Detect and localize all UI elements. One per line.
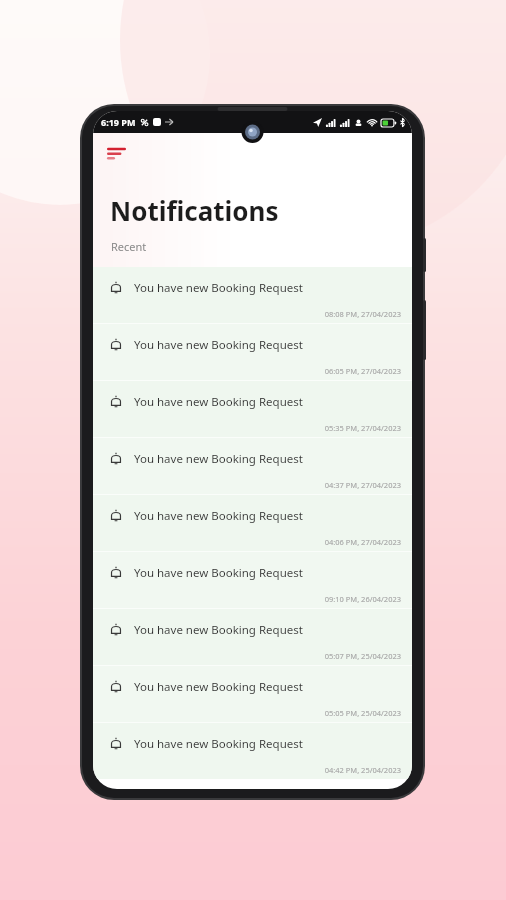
- staticText: You have new Booking Request: [134, 736, 303, 752]
- staticText: You have new Booking Request: [134, 679, 303, 695]
- staticText: You have new Booking Request: [134, 565, 303, 581]
- button[interactable]: You have new Booking Request: [93, 267, 412, 323]
- staticText: You have new Booking Request: [134, 622, 303, 638]
- button[interactable]: You have new Booking Request: [93, 495, 412, 551]
- button[interactable]: Menu: [107, 141, 141, 167]
- button[interactable]: You have new Booking Request: [93, 438, 412, 494]
- staticText: 05:05 PM, 25/04/2023: [324, 708, 401, 718]
- button[interactable]: You have new Booking Request: [93, 609, 412, 665]
- staticText: You have new Booking Request: [134, 451, 303, 467]
- staticText: You have new Booking Request: [134, 280, 303, 296]
- staticText: 04:37 PM, 27/04/2023: [324, 480, 401, 490]
- staticText: 05:07 PM, 25/04/2023: [324, 651, 401, 661]
- button[interactable]: You have new Booking Request: [93, 723, 412, 779]
- staticText: You have new Booking Request: [134, 508, 303, 524]
- staticText: 09:10 PM, 26/04/2023: [324, 594, 401, 604]
- staticText: 06:05 PM, 27/04/2023: [324, 366, 401, 376]
- button[interactable]: You have new Booking Request: [93, 381, 412, 437]
- staticText: Notifications: [110, 193, 279, 228]
- staticText: Recent: [111, 239, 147, 254]
- button[interactable]: You have new Booking Request: [93, 666, 412, 722]
- staticText: 04:42 PM, 25/04/2023: [324, 765, 401, 775]
- staticText: You have new Booking Request: [134, 337, 303, 353]
- staticText: 05:35 PM, 27/04/2023: [324, 423, 401, 433]
- button[interactable]: You have new Booking Request: [93, 324, 412, 380]
- staticText: You have new Booking Request: [134, 394, 303, 410]
- staticText: 08:08 PM, 27/04/2023: [324, 309, 401, 319]
- button[interactable]: You have new Booking Request: [93, 552, 412, 608]
- staticText: 04:06 PM, 27/04/2023: [324, 537, 401, 547]
- staticText: 6:19 PM: [101, 116, 136, 128]
